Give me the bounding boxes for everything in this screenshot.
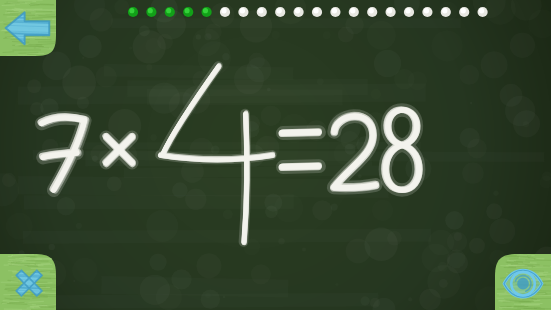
- button[interactable]: Show answer: [495, 254, 551, 310]
- button[interactable]: Back: [0, 0, 56, 56]
- button[interactable]: Close: [0, 254, 56, 310]
